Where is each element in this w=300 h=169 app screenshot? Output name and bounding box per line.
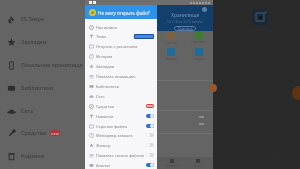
staticText: Фильтр xyxy=(96,143,146,148)
button[interactable]: Камера xyxy=(247,9,272,32)
staticText: Новинки xyxy=(96,114,146,119)
button[interactable]: Закладки xyxy=(0,31,85,53)
button[interactable]: Настройки xyxy=(85,22,157,32)
button[interactable]: Показать список файлов xyxy=(85,150,157,160)
button[interactable]: Закладки xyxy=(85,61,157,71)
button[interactable]: Сеть xyxy=(85,91,157,101)
button[interactable]: Приложения xyxy=(191,31,207,44)
staticText: Показать анимацию xyxy=(96,74,154,79)
button[interactable]: Анализ xyxy=(85,160,157,169)
staticText: Библиотеки xyxy=(96,84,154,89)
staticText: Хранилище xyxy=(171,12,200,19)
button[interactable] xyxy=(134,34,154,39)
staticText: Средства xyxy=(96,104,146,109)
button[interactable]: Видео xyxy=(191,48,207,61)
button[interactable]: New xyxy=(292,86,300,100)
staticText: Не могу открыть файл? xyxy=(98,10,150,16)
button[interactable]: Корзина xyxy=(0,145,85,167)
button[interactable]: ES Swipe xyxy=(0,8,85,30)
staticText: Закладки xyxy=(21,38,47,46)
staticText: new xyxy=(51,131,59,136)
staticText: Сеть xyxy=(96,94,154,99)
button[interactable]: Средства xyxy=(0,122,85,144)
staticText: Главная xyxy=(166,164,178,168)
button[interactable]: Показать анимацию xyxy=(85,71,157,81)
staticText: Средства xyxy=(21,129,47,137)
staticText: Настройки xyxy=(96,25,154,30)
staticText: Очистить xyxy=(178,27,193,31)
button[interactable]: История xyxy=(85,51,157,61)
staticText: Показать список файлов xyxy=(96,153,146,158)
staticText: Музыка xyxy=(165,57,177,61)
button[interactable]: Account xyxy=(202,7,207,12)
staticText: Очистка xyxy=(165,41,177,45)
staticText: Локальное хранилище xyxy=(21,61,83,69)
button[interactable]: Библиотеки xyxy=(85,81,157,91)
staticText: Корзина xyxy=(21,152,44,160)
staticText: Темы xyxy=(96,34,134,39)
staticText: Закладки xyxy=(96,64,154,69)
button[interactable]: Add xyxy=(209,84,217,92)
button[interactable]: Менеджер закачек xyxy=(85,130,157,140)
staticText: Видео xyxy=(194,57,204,61)
button[interactable]: Фильтр xyxy=(85,140,157,150)
button[interactable]: Сеть xyxy=(0,100,85,122)
button[interactable]: Файлы xyxy=(188,157,208,168)
button[interactable]: Локальное хранилище xyxy=(0,54,85,76)
button[interactable]: Главная xyxy=(162,157,182,168)
button[interactable]: Не могу открыть файл? xyxy=(85,5,157,19)
staticText: Сеть xyxy=(21,107,34,115)
staticText: Библиотеки xyxy=(21,84,54,92)
staticText: Скрытые файлы xyxy=(96,124,146,129)
staticText: Файлы xyxy=(193,164,204,168)
staticText: Приложения xyxy=(191,40,207,44)
button[interactable]: Средства xyxy=(85,101,157,111)
staticText: История xyxy=(96,54,154,59)
staticText: Открыть с решением xyxy=(96,44,154,49)
staticText: new xyxy=(147,104,153,108)
button[interactable]: Открыть с решением xyxy=(85,41,157,51)
button[interactable]: Новинки xyxy=(85,111,157,121)
staticText: Анализ xyxy=(96,163,146,168)
staticText: 12.5 ГБ из 32 ГБ занято xyxy=(167,20,203,24)
staticText: Менеджер закачек xyxy=(96,133,146,138)
button[interactable]: Очистить xyxy=(174,26,196,31)
button[interactable]: Библиотеки xyxy=(0,77,85,99)
button[interactable]: Очистка xyxy=(163,32,179,45)
staticText: ES Swipe xyxy=(21,15,45,23)
button[interactable]: Музыка xyxy=(163,48,179,61)
button[interactable]: Скрытые файлы xyxy=(85,121,157,131)
button[interactable]: Темы xyxy=(85,31,157,41)
